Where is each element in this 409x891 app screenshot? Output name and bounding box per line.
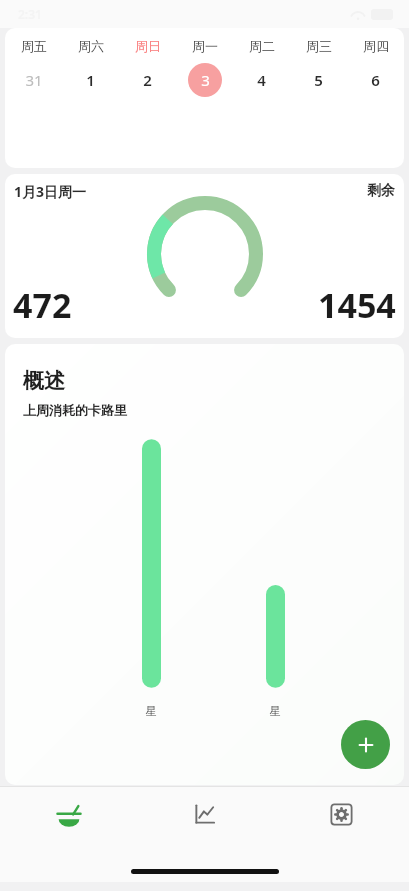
staticText: 472	[13, 282, 72, 328]
staticText: 周五	[21, 38, 47, 54]
button[interactable]: 31	[5, 62, 62, 98]
staticText: 6	[371, 70, 380, 90]
button[interactable]: Food log	[0, 787, 137, 841]
button[interactable]: 1	[62, 62, 119, 98]
button[interactable]: 概述	[5, 344, 404, 785]
button[interactable]: Add entry	[341, 720, 390, 769]
button[interactable]: 周四	[347, 38, 404, 54]
button[interactable]: 6	[347, 62, 404, 98]
staticText: 周四	[363, 38, 389, 54]
button[interactable]: 周六	[62, 38, 119, 54]
staticText: 1月3日周一	[14, 182, 87, 201]
button[interactable]: 4	[233, 62, 290, 98]
staticText: 周三	[306, 38, 332, 54]
staticText: 周一	[192, 38, 218, 54]
staticText: 概述	[23, 368, 65, 394]
button[interactable]: Statistics	[137, 787, 273, 841]
button[interactable]: 周三	[290, 38, 347, 54]
button[interactable]: 3	[176, 62, 233, 98]
staticText: 5	[314, 70, 323, 90]
staticText: 星	[134, 704, 168, 718]
staticText: 3	[201, 70, 210, 90]
staticText: 周六	[78, 38, 104, 54]
staticText: 31	[25, 70, 43, 90]
button[interactable]: 周五	[5, 38, 62, 54]
button[interactable]: Settings	[273, 787, 409, 841]
staticText: 周二	[249, 38, 275, 54]
staticText: 2	[143, 70, 152, 90]
staticText: 4	[257, 70, 266, 90]
staticText: 1454	[318, 282, 396, 328]
staticText: 剩余	[367, 182, 395, 200]
button[interactable]: 周日	[119, 38, 176, 54]
staticText: 周日	[135, 38, 161, 54]
button[interactable]: 周二	[233, 38, 290, 54]
button[interactable]: 5	[290, 62, 347, 98]
button[interactable]: 1月3日周一	[5, 174, 404, 338]
button[interactable]: 周一	[176, 38, 233, 54]
button[interactable]: 2	[119, 62, 176, 98]
staticText: 1	[86, 70, 95, 90]
staticText: 星	[258, 704, 292, 718]
staticText: 上周消耗的卡路里	[23, 402, 127, 418]
